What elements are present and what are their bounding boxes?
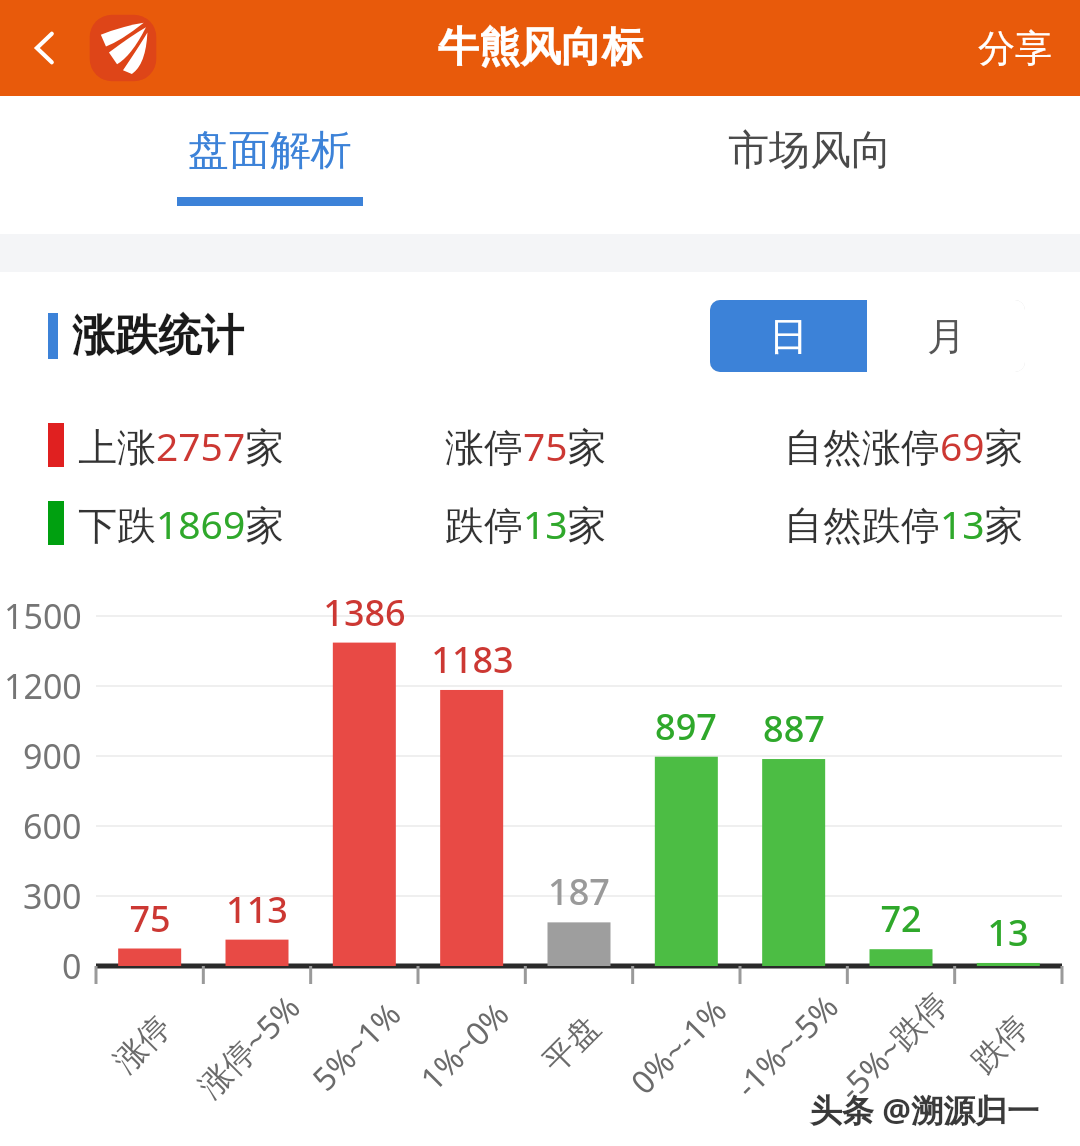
staticText: 涨停75家 (445, 419, 607, 472)
staticText: 600 (23, 803, 82, 849)
staticText: 72 (880, 894, 922, 943)
button[interactable]: 市场风向 (540, 96, 1080, 234)
staticText: 1500 (4, 593, 82, 639)
staticText: 月 (927, 312, 966, 361)
staticText: 887 (763, 704, 825, 753)
staticText: 75 (129, 894, 171, 943)
button[interactable]: Back (16, 19, 74, 77)
staticText: 盘面解析 (188, 125, 352, 177)
staticText: 日 (769, 312, 808, 361)
staticText: 113 (226, 885, 288, 934)
staticText: 897 (655, 702, 717, 751)
button[interactable]: 分享 (950, 9, 1080, 88)
staticText: 1183 (431, 635, 514, 684)
button[interactable]: App logo (86, 11, 160, 85)
staticText: 0%~-1% (621, 988, 736, 1104)
staticText: 187 (548, 867, 610, 916)
staticText: 涨跌统计 (72, 309, 244, 363)
staticText: 1386 (323, 588, 406, 637)
staticText: 头条 @溯源归一 (810, 1088, 1040, 1132)
staticText: 300 (23, 873, 82, 919)
staticText: 上涨2757家 (78, 419, 285, 472)
staticText: 牛熊风向标 (438, 22, 643, 74)
staticText: 市场风向 (728, 125, 892, 177)
staticText: 分享 (978, 25, 1052, 72)
staticText: 900 (23, 733, 82, 779)
staticText: 5%~1% (302, 992, 411, 1100)
button[interactable]: 盘面解析 (0, 96, 540, 234)
staticText: 下跌1869家 (78, 497, 285, 550)
staticText: 跌停 (963, 1007, 1037, 1081)
staticText: 1%~0% (410, 992, 519, 1100)
staticText: 自然涨停69家 (784, 419, 1024, 472)
staticText: 13 (987, 908, 1029, 957)
staticText: 涨停 (105, 1007, 179, 1081)
button[interactable]: 日 (710, 300, 867, 372)
staticText: 跌停13家 (445, 497, 607, 550)
staticText: 平盘 (534, 1007, 608, 1081)
staticText: 自然跌停13家 (784, 497, 1024, 550)
staticText: 0 (62, 943, 82, 989)
staticText: 涨停~5% (188, 985, 310, 1107)
button[interactable]: 月 (867, 300, 1025, 372)
staticText: -1%~-5% (725, 985, 848, 1107)
staticText: -5%~跌停 (829, 982, 957, 1110)
staticText: 1200 (4, 663, 82, 709)
